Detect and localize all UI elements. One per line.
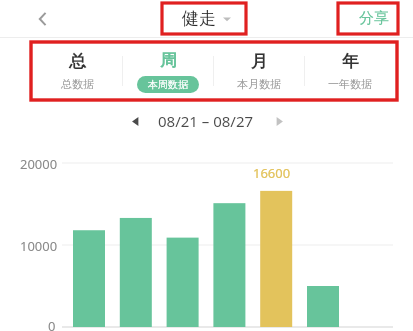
button[interactable]: 健走 <box>182 8 231 29</box>
button[interactable]: 总 <box>33 44 122 98</box>
staticText: 总 <box>69 51 86 72</box>
staticText: 20000 <box>20 155 58 173</box>
staticText: 08/21 – 08/27 <box>158 111 254 131</box>
button[interactable]: Previous week <box>122 108 148 134</box>
staticText: 月 <box>251 51 268 72</box>
staticText: 16600 <box>253 164 291 182</box>
button[interactable]: Back <box>26 2 60 36</box>
staticText: 健走 <box>182 8 216 29</box>
button[interactable]: Next week <box>266 108 292 134</box>
button[interactable]: 年 <box>305 44 395 98</box>
staticText: 分享 <box>359 9 389 28</box>
staticText: 本月数据 <box>237 77 281 91</box>
staticText: 10000 <box>20 237 58 255</box>
staticText: 年 <box>342 51 359 72</box>
button[interactable]: 分享 <box>359 9 389 28</box>
button[interactable]: 周 <box>123 44 213 98</box>
staticText: 本周数据 <box>148 78 188 91</box>
staticText: 周 <box>160 50 177 71</box>
staticText: 一年数据 <box>328 77 372 91</box>
button[interactable]: 月 <box>214 44 304 98</box>
staticText: 总数据 <box>61 77 94 91</box>
staticText: 0 <box>48 317 56 331</box>
